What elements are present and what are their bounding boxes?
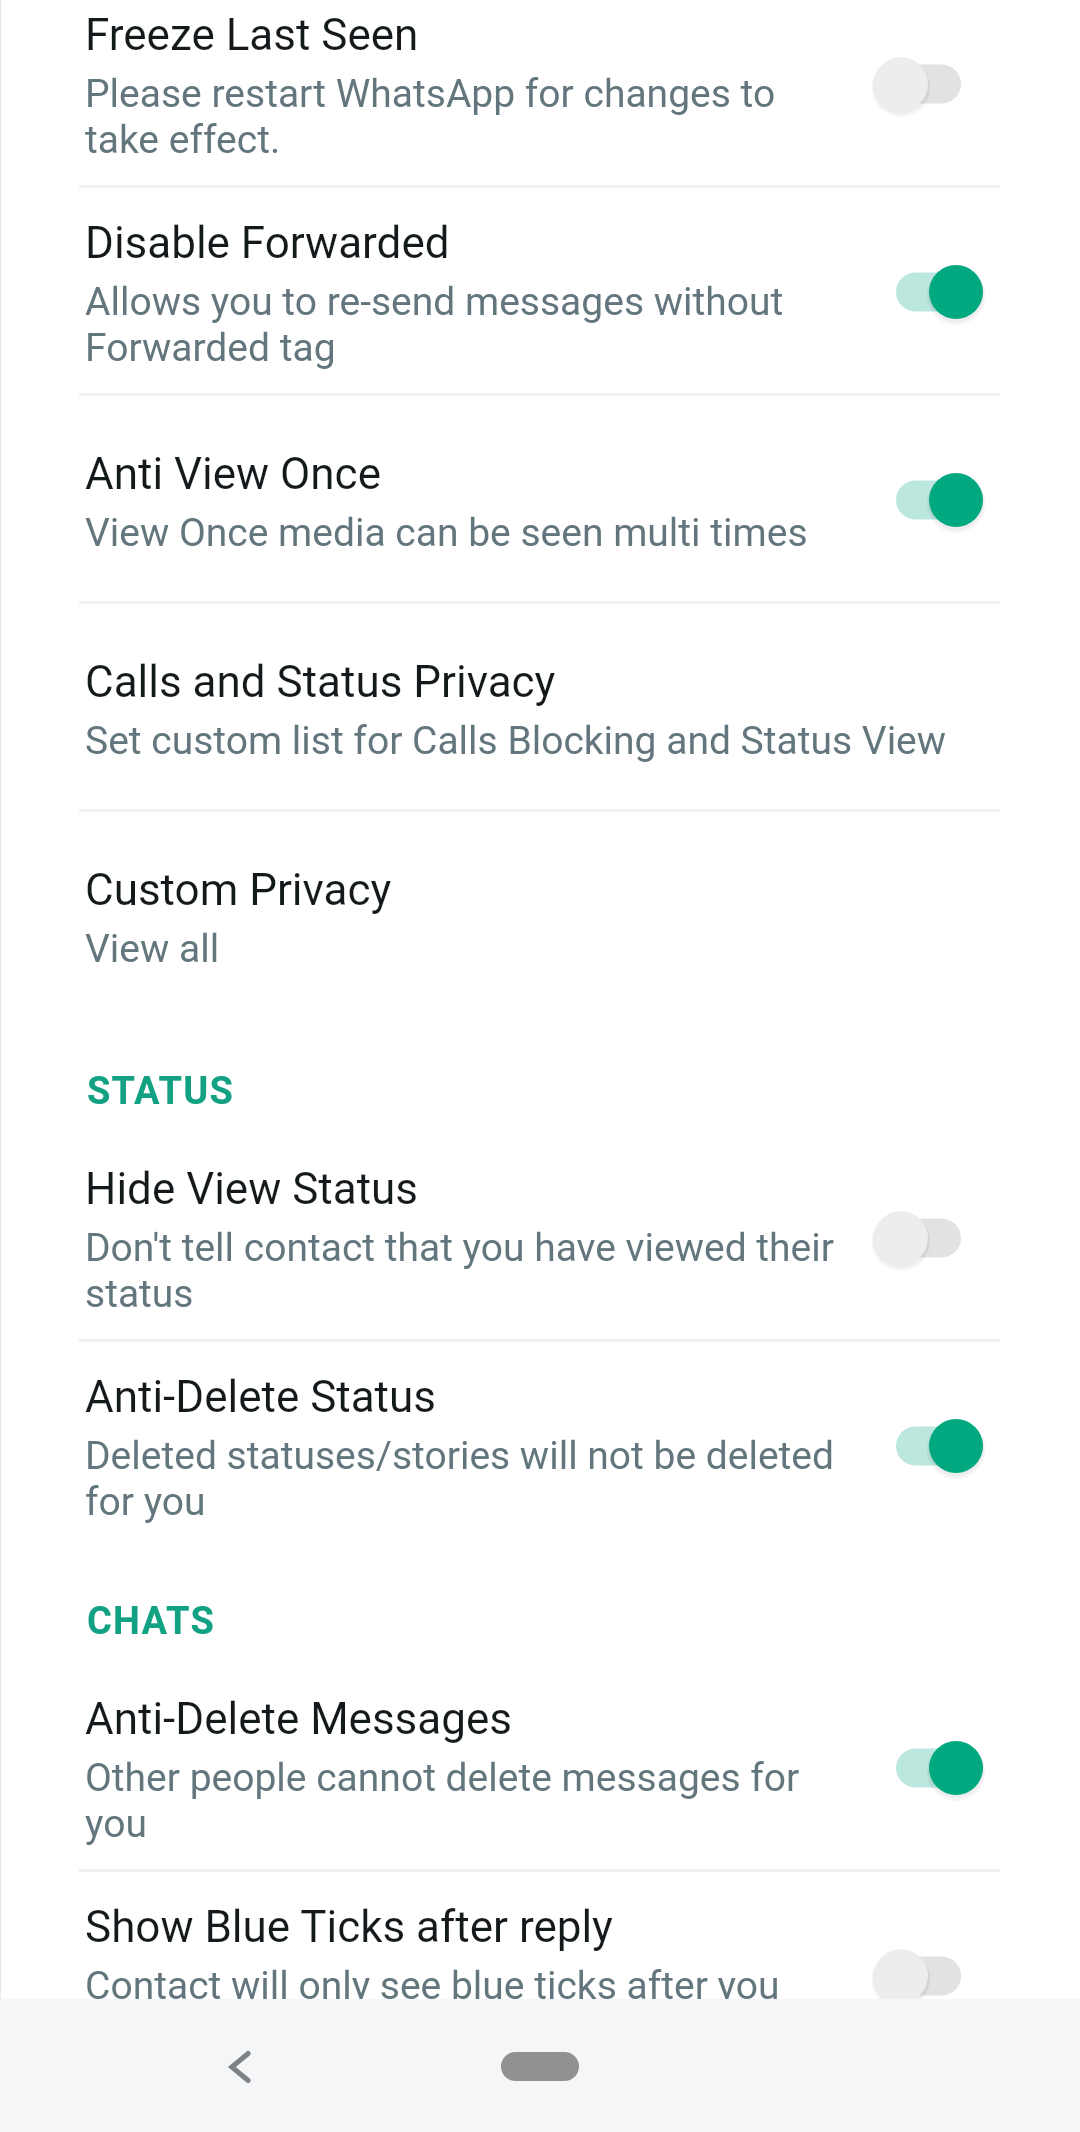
button[interactable]: Disable Forwarded [0,188,1080,396]
staticText: Disable Forwarded [85,217,450,269]
button[interactable]: Custom Privacy [0,812,1080,1020]
button[interactable]: Back [178,2011,288,2121]
staticText: Calls and Status Privacy [85,656,556,708]
staticText: Set custom list for Calls Blocking and S… [85,718,947,764]
staticText: STATUS [87,1069,235,1113]
button[interactable]: Freeze Last Seen off [874,48,983,120]
button[interactable]: Anti View Once on [874,464,983,536]
button[interactable]: Disable Forwarded on [874,256,983,328]
staticText: Please restart WhatsApp for changes to t… [85,71,850,163]
staticText: Deleted statuses/stories will not be del… [85,1433,850,1525]
button[interactable]: Calls and Status Privacy [0,604,1080,812]
button[interactable]: Anti View Once [0,396,1080,604]
button[interactable]: Anti-Delete Messages on [874,1732,983,1804]
staticText: Freeze Last Seen [85,9,419,61]
button[interactable]: Show Blue Ticks after reply [0,1872,1080,2080]
staticText: Anti View Once [85,448,381,500]
staticText: Anti-Delete Messages [85,1693,512,1745]
staticText: Hide View Status [85,1163,418,1215]
staticText: Anti-Delete Status [85,1371,436,1423]
button[interactable]: Show Blue Ticks after reply off [874,1940,983,2012]
staticText: Don't tell contact that you have viewed … [85,1225,850,1317]
button[interactable]: Home [501,2052,579,2081]
staticText: Other people cannot delete messages for … [85,1755,850,1847]
staticText: CHATS [87,1599,216,1643]
staticText: Custom Privacy [85,864,392,916]
staticText: Show Blue Ticks after reply [85,1901,613,1953]
staticText: Allows you to re-send messages without F… [85,279,850,371]
button[interactable]: Hide View Status [0,1134,1080,1342]
button[interactable]: Anti-Delete Status on [874,1410,983,1482]
button[interactable]: Hide View Status off [874,1202,983,1274]
staticText: View Once media can be seen multi times [85,510,808,556]
button[interactable]: Freeze Last Seen [0,0,1080,188]
button[interactable]: Anti-Delete Status [0,1342,1080,1550]
staticText: View all [85,926,220,972]
button[interactable]: Anti-Delete Messages [0,1664,1080,1872]
staticText: Contact will only see blue ticks after y… [85,1963,850,2055]
